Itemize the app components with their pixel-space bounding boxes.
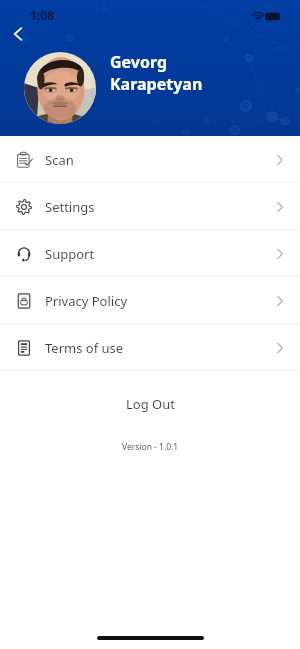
staticText: Privacy Policy xyxy=(45,292,128,310)
button[interactable]: Profile photo xyxy=(24,52,96,124)
staticText: 1:08 xyxy=(30,7,54,23)
button[interactable]: Log Out xyxy=(0,389,300,419)
button[interactable]: Back xyxy=(6,22,30,46)
staticText: Terms of use xyxy=(45,339,124,357)
button[interactable]: Settings xyxy=(0,183,300,229)
staticText: Support xyxy=(45,245,95,263)
staticText: Version - 1.0.1 xyxy=(122,441,179,453)
staticText: Scan xyxy=(45,151,74,169)
staticText: Log Out xyxy=(126,395,175,413)
staticText: Karapetyan xyxy=(110,73,203,95)
staticText: Settings xyxy=(45,198,95,216)
button[interactable]: Scan xyxy=(0,136,300,182)
staticText: Gevorg xyxy=(110,51,168,73)
button[interactable]: Privacy Policy xyxy=(0,277,300,323)
button[interactable]: Support xyxy=(0,230,300,276)
button[interactable]: Terms of use xyxy=(0,324,300,370)
